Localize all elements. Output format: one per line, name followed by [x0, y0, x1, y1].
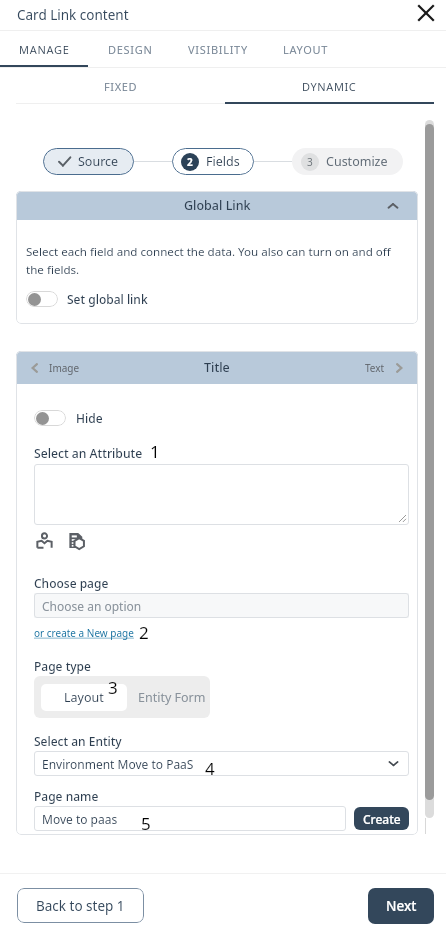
button[interactable]: User attribute	[34, 530, 54, 550]
button[interactable]: 2	[172, 148, 254, 175]
staticText: 3	[307, 155, 313, 169]
staticText: DESIGN	[108, 42, 153, 57]
staticText: Layout	[64, 689, 104, 706]
button[interactable]: LAYOUT	[264, 31, 348, 67]
button[interactable]: VISIBILITY	[172, 31, 264, 67]
button[interactable]: Source	[43, 148, 134, 175]
staticText: Set global link	[67, 291, 148, 307]
staticText: Choose an option	[42, 598, 142, 614]
button[interactable]: Environment Move to PaaS	[34, 751, 409, 776]
button[interactable]: Global Link	[16, 191, 418, 220]
button[interactable]: Layout	[41, 684, 127, 711]
staticText: 5	[141, 812, 151, 835]
staticText: 2	[187, 155, 193, 169]
staticText: Choose page	[34, 575, 109, 591]
button[interactable]: DYNAMIC	[225, 68, 434, 104]
staticText: Environment Move to PaaS	[42, 756, 194, 772]
button[interactable]: Choose an option	[34, 593, 409, 618]
staticText: Customize	[326, 153, 388, 170]
staticText: MANAGE	[19, 42, 70, 57]
button[interactable]: Close	[413, 0, 439, 26]
staticText: Text	[365, 361, 385, 375]
staticText: DYNAMIC	[302, 79, 357, 94]
button[interactable]: Entity attribute	[66, 530, 86, 550]
button[interactable]: Set global link	[26, 291, 148, 307]
staticText: Back to step 1	[36, 897, 125, 915]
staticText: Page name	[34, 788, 99, 804]
staticText: Select an Attribute	[34, 445, 143, 462]
button[interactable]: Entity Form	[134, 684, 210, 711]
staticText: Hide	[76, 410, 103, 426]
button[interactable]: Image	[16, 351, 88, 384]
staticText: LAYOUT	[283, 42, 329, 57]
staticText: Card Link content	[17, 6, 129, 24]
button[interactable]: Back to step 1	[17, 888, 144, 923]
staticText: Title	[204, 359, 230, 376]
staticText: Move to paas	[42, 811, 118, 827]
staticText: VISIBILITY	[188, 42, 248, 57]
staticText: Fields	[206, 153, 240, 170]
button[interactable]: Move to paas	[34, 806, 346, 831]
button[interactable]: or create a New page	[34, 626, 134, 640]
staticText: Entity Form	[138, 689, 206, 706]
staticText: 1	[150, 440, 160, 463]
staticText: Create	[363, 811, 401, 827]
staticText: 4	[205, 757, 215, 780]
button[interactable]	[34, 464, 409, 525]
staticText: 3	[108, 676, 118, 699]
button[interactable]: FIXED	[16, 68, 225, 104]
button[interactable]: Hide	[34, 410, 103, 426]
staticText: Next	[386, 897, 417, 915]
button[interactable]: MANAGE	[0, 31, 88, 67]
button[interactable]: Text	[357, 351, 418, 384]
button[interactable]: Next	[368, 888, 434, 924]
staticText: Select each field and connect the data. …	[26, 244, 408, 278]
button[interactable]: DESIGN	[88, 31, 172, 67]
button[interactable]: 3	[292, 148, 403, 175]
staticText: Global Link	[184, 197, 251, 214]
staticText: Page type	[34, 658, 91, 674]
staticText: FIXED	[104, 79, 138, 94]
staticText: 2	[139, 621, 149, 644]
staticText: Select an Entity	[34, 733, 122, 749]
button[interactable]: Create	[354, 807, 409, 830]
staticText: Source	[78, 153, 119, 170]
staticText: Image	[49, 361, 80, 375]
